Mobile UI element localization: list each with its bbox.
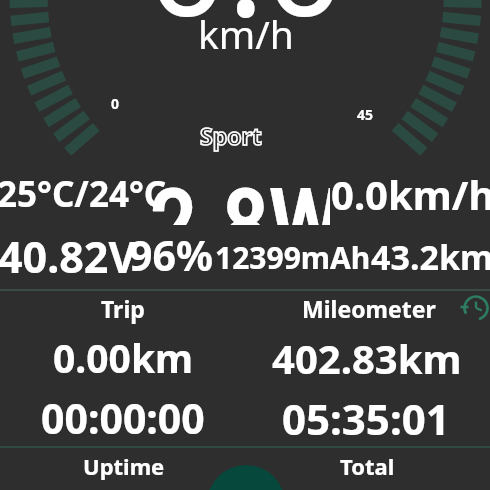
staticText: Total (340, 451, 395, 481)
staticText: 402.83km (272, 331, 462, 385)
staticText: 0.0 (147, 0, 345, 57)
staticText: Trip (101, 293, 145, 324)
staticText: km/h (198, 7, 294, 60)
staticText: 40.82V (0, 227, 137, 286)
staticText: 00:00:00 (41, 390, 205, 446)
staticText: 0.00km (53, 331, 194, 384)
staticText: 96% (129, 227, 213, 283)
staticText: 45 (357, 105, 374, 124)
staticText: 43.2km (371, 234, 490, 280)
staticText: 05:35:01 (282, 390, 450, 447)
staticText: Mileometer (302, 293, 436, 324)
staticText: 25°C/24°C (0, 170, 167, 218)
staticText: 2.8W (150, 169, 330, 225)
button[interactable]: Reset trip (462, 294, 490, 322)
staticText: Uptime (83, 451, 165, 481)
staticText: 0 (111, 94, 120, 113)
staticText: Sport (200, 120, 262, 151)
staticText: 12399mAh (215, 237, 371, 278)
button[interactable]: Start ride (207, 465, 285, 490)
staticText: 0.0km/h (331, 167, 490, 221)
